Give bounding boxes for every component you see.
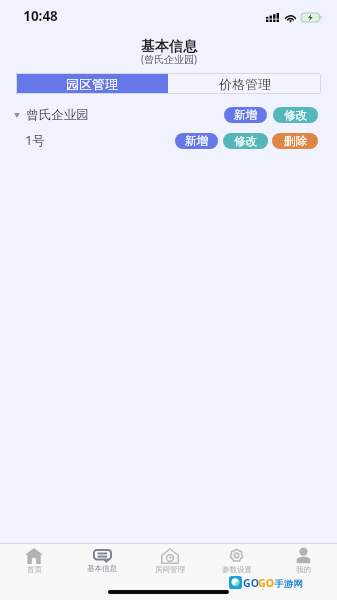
button[interactable]: 我的 [270, 544, 337, 577]
staticText: 手游网 [274, 578, 303, 590]
button[interactable]: Collapse group [0, 103, 337, 127]
button[interactable]: 基本信息 [68, 544, 136, 577]
staticText: 价格管理 [219, 76, 271, 92]
staticText: (曾氏企业园) [141, 52, 197, 66]
staticText: 我的 [296, 565, 311, 574]
button[interactable]: 修改 [273, 107, 318, 123]
staticText: www.gogo5.cn [244, 588, 269, 590]
staticText: 10:48 [23, 7, 58, 25]
staticText: 新增 [234, 108, 257, 122]
staticText: 新增 [185, 134, 208, 148]
button[interactable]: 园区管理 [16, 73, 168, 94]
button[interactable]: 参数设置 [203, 544, 270, 577]
staticText: 首页 [27, 565, 42, 574]
button[interactable]: Collapse group [11, 108, 23, 122]
staticText: GO [258, 576, 274, 590]
button[interactable]: 首页 [0, 544, 68, 577]
staticText: 修改 [284, 108, 307, 122]
button[interactable]: 新增 [175, 133, 218, 149]
button[interactable]: 价格管理 [168, 73, 321, 94]
staticText: 曾氏企业园 [26, 107, 89, 123]
staticText: 删除 [284, 134, 307, 148]
staticText: 1号 [25, 132, 45, 149]
button[interactable]: 修改 [223, 133, 268, 149]
button[interactable]: 房间管理 [136, 544, 203, 577]
staticText: 房间管理 [155, 565, 185, 574]
staticText: 参数设置 [222, 565, 252, 574]
staticText: 基本信息 [87, 564, 117, 573]
button[interactable]: 删除 [272, 133, 318, 149]
button[interactable]: 1号 [0, 127, 337, 154]
staticText: GO [243, 576, 259, 590]
staticText: 修改 [234, 134, 257, 148]
button[interactable]: 新增 [224, 107, 267, 123]
staticText: 园区管理 [66, 76, 118, 92]
staticText: 基本信息 [141, 38, 197, 56]
